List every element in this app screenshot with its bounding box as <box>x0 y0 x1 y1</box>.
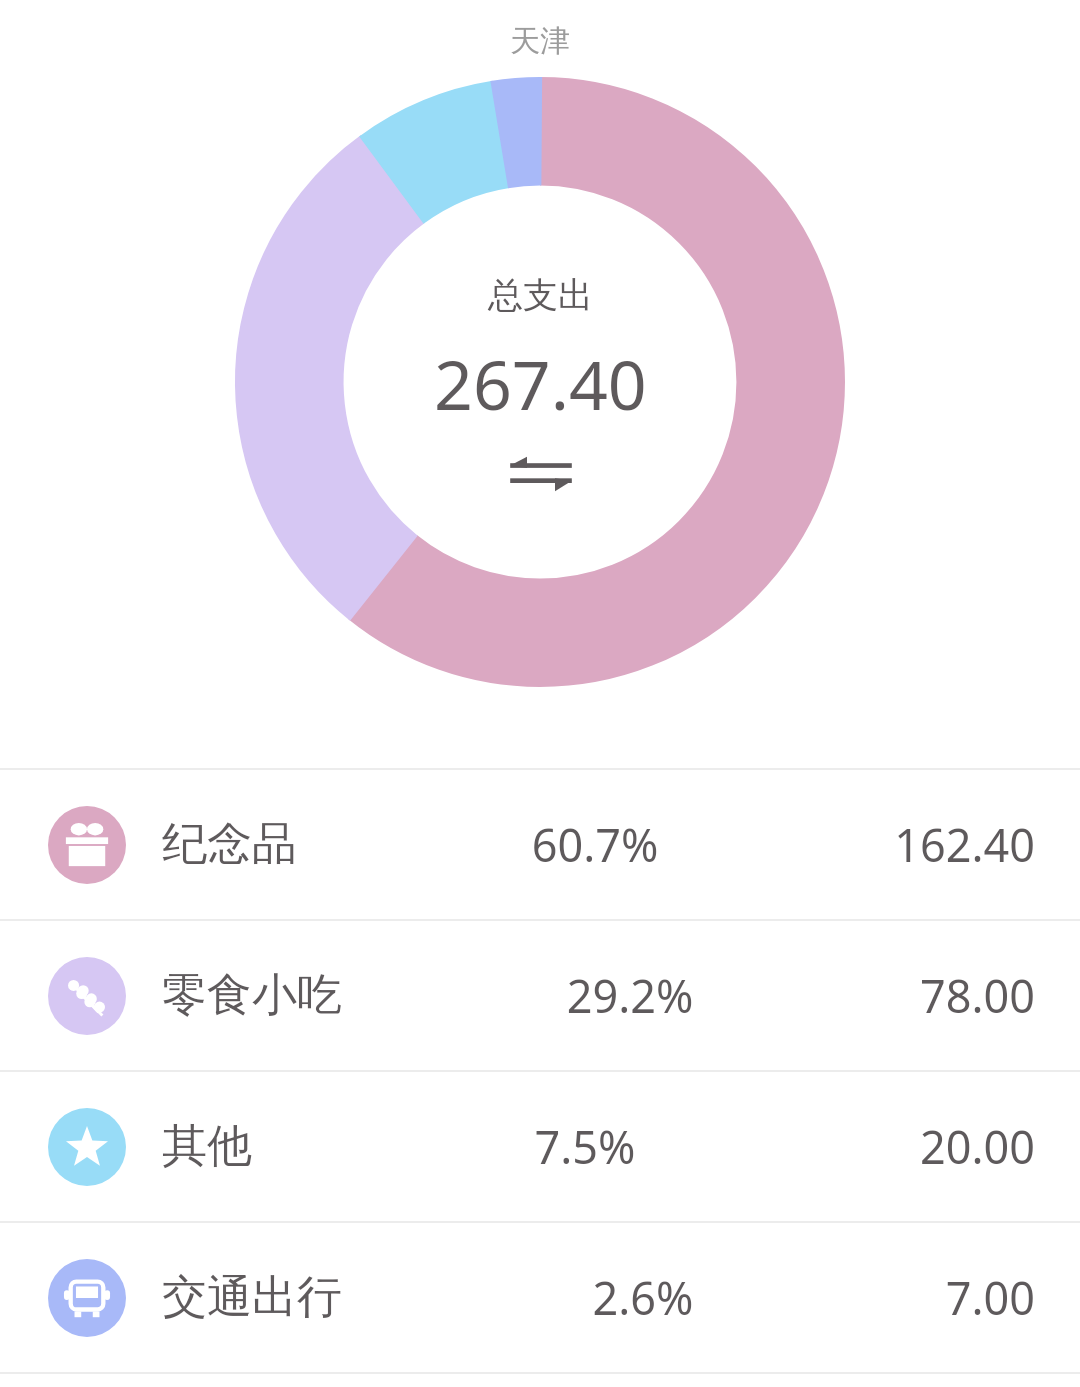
staticText: 2.6% <box>493 1267 793 1328</box>
staticText: 纪念品 <box>162 816 297 873</box>
button[interactable]: 其他 <box>0 1072 1080 1221</box>
staticText: 总支出 <box>488 273 593 317</box>
staticText: 7.5% <box>435 1116 735 1177</box>
button[interactable]: 纪念品 <box>0 770 1080 919</box>
staticText: 零食小吃 <box>162 967 342 1024</box>
staticText: 29.2% <box>480 965 780 1026</box>
staticText: 其他 <box>162 1118 252 1175</box>
staticText: 60.7% <box>445 814 745 875</box>
button[interactable]: 零食小吃 <box>0 921 1080 1070</box>
staticText: 78.00 <box>919 965 1035 1026</box>
staticText: 交通出行 <box>162 1269 342 1326</box>
staticText: 天津 <box>0 22 1080 60</box>
button[interactable]: 交通出行 <box>0 1223 1080 1372</box>
staticText: 267.40 <box>434 337 647 430</box>
staticText: 7.00 <box>945 1267 1035 1328</box>
staticText: 20.00 <box>919 1116 1035 1177</box>
other: Toggle currency <box>506 456 576 492</box>
staticText: 162.40 <box>894 814 1035 875</box>
